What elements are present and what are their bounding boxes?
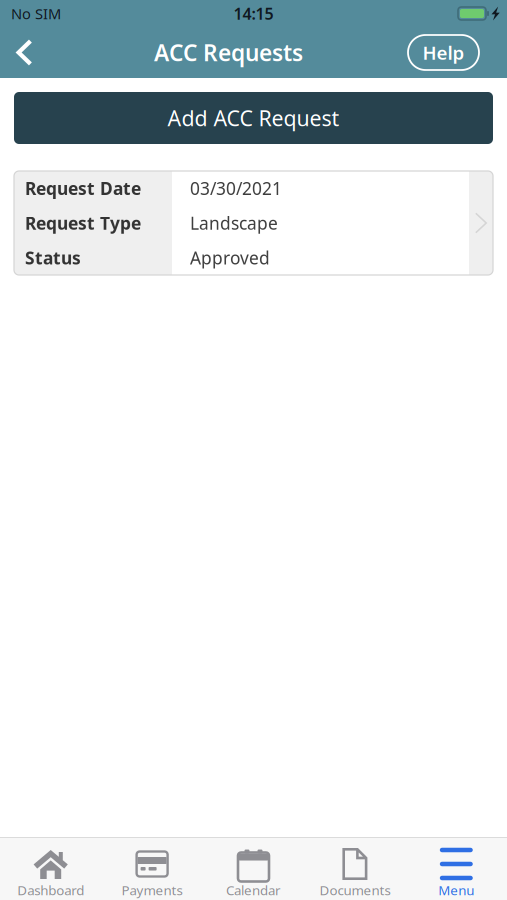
staticText: Menu — [438, 881, 474, 899]
button[interactable]: Payments — [101, 838, 203, 899]
staticText: Add ACC Request — [167, 104, 339, 132]
button[interactable]: Back — [0, 27, 49, 78]
button[interactable]: Calendar — [203, 838, 304, 899]
staticText: Help — [422, 40, 464, 65]
staticText: Dashboard — [17, 881, 84, 899]
button[interactable]: Add ACC Request — [14, 92, 493, 144]
staticText: Request Date — [25, 177, 141, 200]
button[interactable]: Request Date — [14, 171, 493, 275]
staticText: Landscape — [190, 211, 278, 234]
staticText: Calendar — [226, 881, 281, 899]
staticText: Approved — [190, 246, 270, 269]
button[interactable]: Help — [408, 35, 479, 70]
staticText: Request Type — [25, 211, 141, 234]
button[interactable]: Dashboard — [0, 838, 101, 899]
staticText: Documents — [319, 881, 390, 899]
button[interactable]: Documents — [304, 838, 406, 899]
staticText: Status — [25, 246, 81, 269]
staticText: 03/30/2021 — [190, 177, 282, 200]
staticText: 14:15 — [233, 3, 273, 24]
staticText: Payments — [122, 881, 183, 899]
staticText: ACC Requests — [154, 37, 303, 67]
staticText: No SIM — [11, 4, 61, 23]
button[interactable]: Menu — [406, 838, 507, 899]
